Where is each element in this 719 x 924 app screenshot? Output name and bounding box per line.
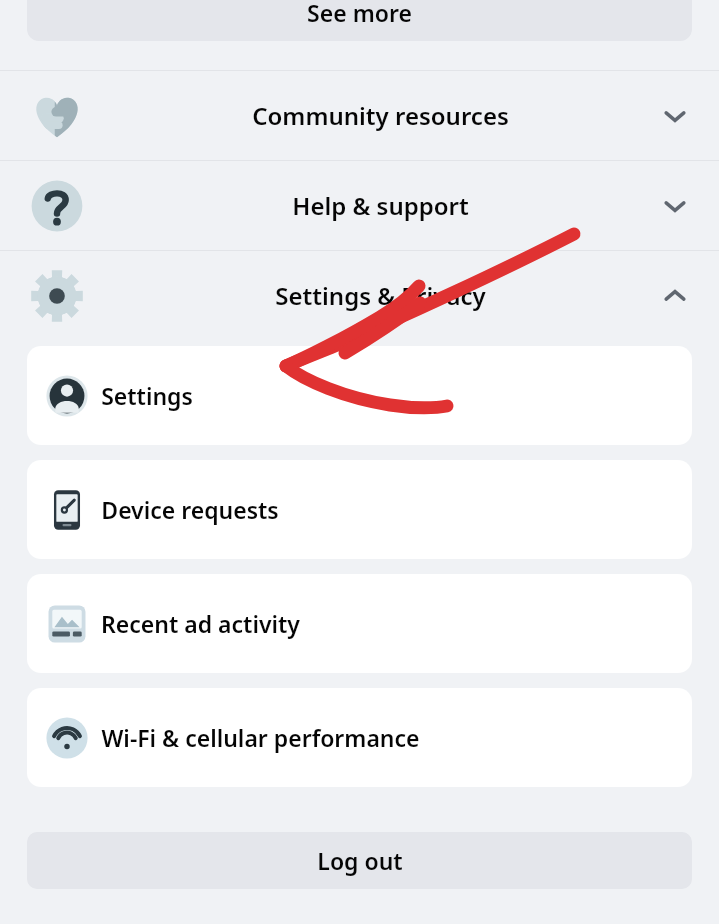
button[interactable]: Settings & Privacy bbox=[0, 251, 719, 340]
button[interactable]: Recent ad activity bbox=[27, 574, 692, 673]
other: Expand bbox=[655, 96, 695, 136]
staticText: See more bbox=[307, 0, 412, 28]
button[interactable]: Help & support bbox=[0, 161, 719, 250]
staticText: Log out bbox=[317, 845, 403, 876]
staticText: Recent ad activity bbox=[101, 608, 300, 639]
button[interactable]: Log out bbox=[27, 832, 692, 889]
button[interactable]: Device requests bbox=[27, 460, 692, 559]
other: Expand bbox=[655, 186, 695, 226]
staticText: Settings bbox=[101, 380, 193, 411]
other: Collapse bbox=[655, 276, 695, 316]
staticText: Help & support bbox=[106, 189, 655, 222]
staticText: Wi-Fi & cellular performance bbox=[101, 722, 420, 753]
button[interactable]: Wi-Fi & cellular performance bbox=[27, 688, 692, 787]
button[interactable]: Settings bbox=[27, 346, 692, 445]
button[interactable]: See more bbox=[27, 0, 692, 41]
staticText: Community resources bbox=[106, 99, 655, 132]
button[interactable]: Community resources bbox=[0, 71, 719, 160]
staticText: Device requests bbox=[101, 494, 279, 525]
staticText: Settings & Privacy bbox=[106, 279, 655, 312]
